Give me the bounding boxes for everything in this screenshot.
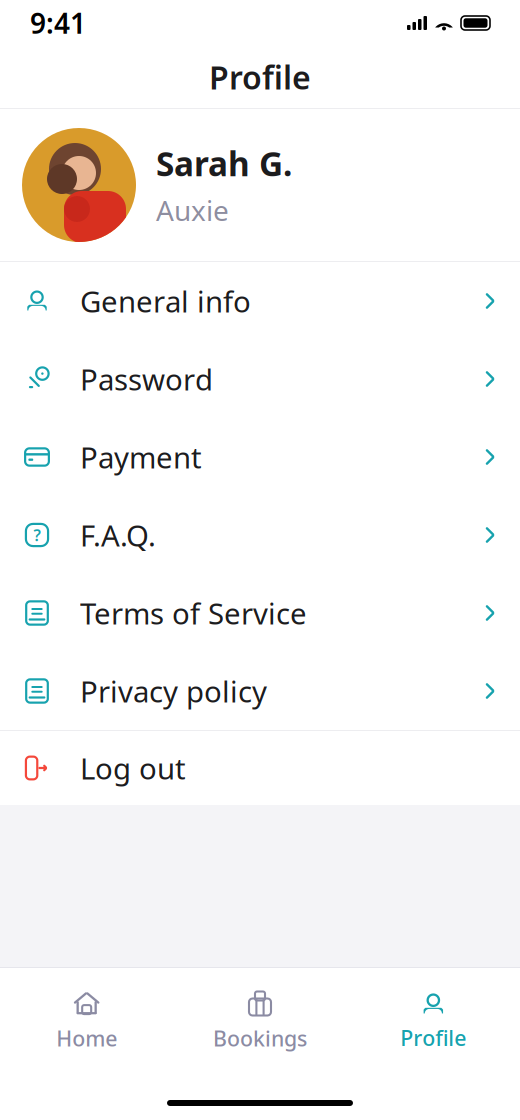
button[interactable]: Password xyxy=(0,340,520,418)
staticText: Privacy policy xyxy=(80,671,267,710)
button[interactable]: Profile xyxy=(347,982,520,1060)
staticText: Sarah G. xyxy=(156,141,292,186)
button[interactable]: Privacy policy xyxy=(0,652,520,730)
button[interactable]: Terms of Service xyxy=(0,574,520,652)
staticText: Terms of Service xyxy=(80,593,307,632)
button[interactable]: General info xyxy=(0,262,520,340)
button[interactable]: Payment xyxy=(0,418,520,496)
staticText: Payment xyxy=(80,437,202,476)
staticText: Bookings xyxy=(213,1024,307,1052)
button[interactable]: Home xyxy=(0,982,173,1060)
staticText: ? xyxy=(33,524,40,546)
staticText: Home xyxy=(56,1024,117,1052)
staticText: Password xyxy=(80,359,213,398)
staticText: 9:41 xyxy=(30,4,86,42)
staticText: Auxie xyxy=(156,191,229,229)
staticText: F.A.Q. xyxy=(80,515,156,554)
staticText: General info xyxy=(80,281,251,320)
staticText: Profile xyxy=(400,1023,466,1052)
button[interactable]: ? xyxy=(0,496,520,574)
staticText: Profile xyxy=(209,56,311,98)
button[interactable]: Bookings xyxy=(173,982,347,1060)
staticText: Log out xyxy=(80,748,186,787)
button[interactable]: Log out xyxy=(0,731,520,805)
